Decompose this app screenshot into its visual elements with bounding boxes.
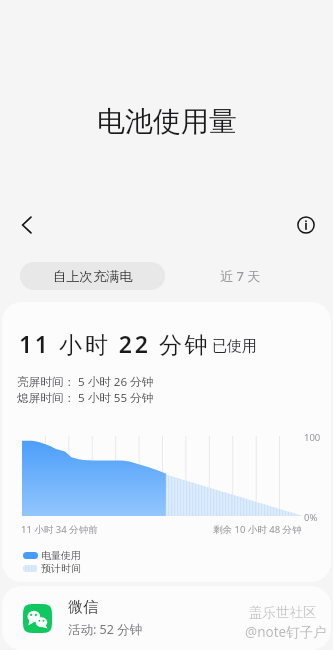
staticText: 近 7 天 xyxy=(220,267,261,285)
button[interactable]: 微信 xyxy=(2,586,331,650)
button[interactable]: Back xyxy=(11,209,43,241)
staticText: 100 xyxy=(304,431,321,444)
staticText: @note钉子户 xyxy=(245,623,327,641)
staticText: 电池使用量 xyxy=(97,104,237,139)
staticText: 已使用 xyxy=(212,337,257,356)
staticText: 11 小时 22 分钟 xyxy=(19,328,211,359)
staticText: 活动: 52 分钟 xyxy=(68,621,143,638)
button[interactable]: Information xyxy=(290,209,322,241)
staticText: 电量使用 xyxy=(41,549,81,562)
staticText: 预计时间 xyxy=(41,562,81,575)
staticText: 亮屏时间： 5 小时 26 分钟 xyxy=(17,374,154,390)
button[interactable]: 自上次充满电 xyxy=(20,262,165,290)
staticText: 盖乐世社区 xyxy=(249,604,317,621)
staticText: 11 小时 34 分钟前 xyxy=(21,523,98,536)
staticText: 剩余 10 小时 48 分钟 xyxy=(213,523,302,536)
staticText: 熄屏时间： 5 小时 55 分钟 xyxy=(17,390,154,406)
staticText: 0% xyxy=(304,511,318,524)
staticText: 自上次充满电 xyxy=(53,268,133,285)
staticText: 微信 xyxy=(68,598,98,617)
button[interactable]: 近 7 天 xyxy=(178,262,303,290)
